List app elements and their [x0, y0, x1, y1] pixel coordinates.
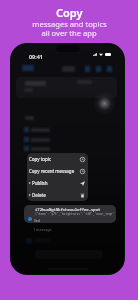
staticText: 09:41 [29, 53, 43, 60]
staticText: Copy topic [29, 156, 80, 162]
staticText: i72huaNgtNkfcheruloffee-spot [35, 207, 101, 212]
staticText: Copy [56, 5, 83, 20]
staticText: Copy recent message [29, 168, 80, 174]
button[interactable]: Copy topic [27, 153, 88, 165]
staticText: Delete [32, 192, 80, 198]
button[interactable]: Publish [27, 177, 88, 189]
staticText: 1 message [33, 227, 52, 232]
staticText: {"dawn":"q76","brightness":"t30","oazn_t… [35, 212, 115, 216]
staticText: Sed [34, 218, 40, 223]
staticText: all over the app [41, 28, 97, 38]
staticText: messages and topics [32, 19, 107, 29]
staticText: Publish [32, 180, 80, 186]
button[interactable]: Delete [27, 189, 88, 201]
button[interactable]: Copy recent message [27, 165, 88, 177]
